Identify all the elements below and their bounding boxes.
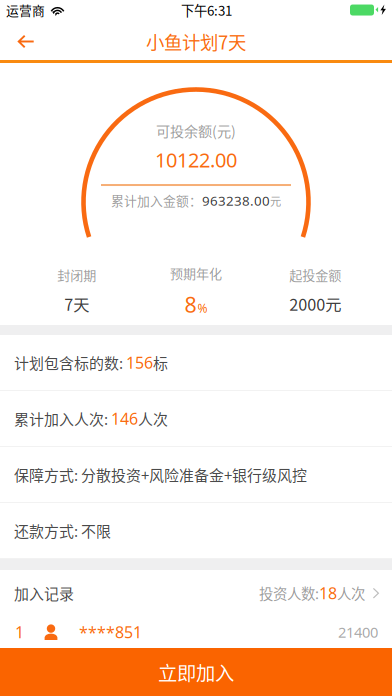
staticText: 累计加入金额： [111,191,202,209]
staticText: 156 [126,352,153,373]
button[interactable]: 返回 [0,20,52,63]
staticText: 元 [270,193,281,209]
staticText: 分散投资+风险准备金+银行级风控 [81,464,307,485]
staticText: 21400 [338,622,378,642]
staticText: 可投余额(元) [156,120,236,140]
staticText: 保障方式: [14,464,81,485]
staticText: 人次 [337,583,365,603]
staticText: 标 [153,352,168,373]
staticText: 累计加入人次: [14,408,111,429]
staticText: 18 [319,582,337,604]
staticText: 立即加入 [158,658,234,686]
button[interactable]: 加入记录 [0,570,392,616]
staticText: 人次 [138,408,168,429]
staticText: 下午6:31 [181,0,232,20]
staticText: % [197,300,207,316]
staticText: 不限 [81,520,111,541]
staticText: 运营商 [6,1,45,19]
staticText: 投资人数: [259,583,319,603]
staticText: 7天 [64,292,89,315]
staticText: 还款方式: [14,520,81,541]
staticText: 计划包含标的数: [14,352,126,373]
staticText: 2000元 [289,292,341,315]
staticText: 加入记录 [14,582,74,604]
staticText: 预期年化 [170,263,222,282]
staticText: 1 [15,621,24,643]
staticText: 小鱼计划7天 [146,28,246,55]
staticText: 起投金额 [289,265,341,284]
staticText: ****851 [79,621,142,643]
staticText: 146 [111,408,138,429]
button[interactable]: 立即加入 [0,648,392,696]
staticText: 8 [184,290,196,319]
staticText: 封闭期 [57,265,96,284]
staticText: 963238.00 [202,192,270,209]
staticText: 10122.00 [155,146,237,173]
